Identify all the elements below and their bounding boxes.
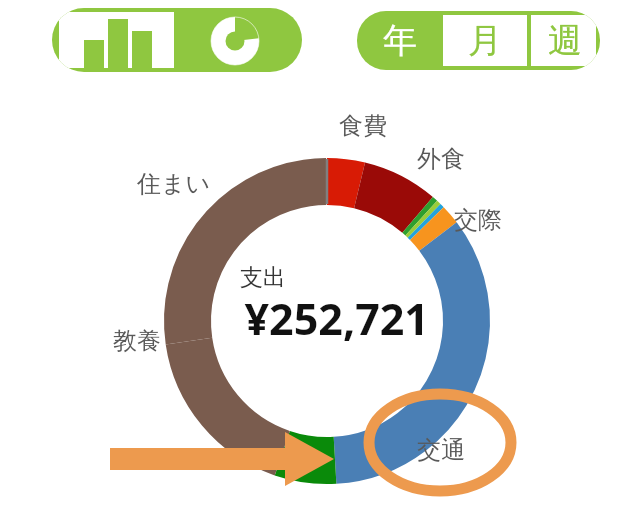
- button[interactable]: [443, 15, 527, 66]
- button[interactable]: Pie chart view: [174, 8, 302, 72]
- button[interactable]: [531, 15, 596, 66]
- button[interactable]: [357, 11, 443, 70]
- button[interactable]: Bar chart view: [59, 12, 174, 68]
